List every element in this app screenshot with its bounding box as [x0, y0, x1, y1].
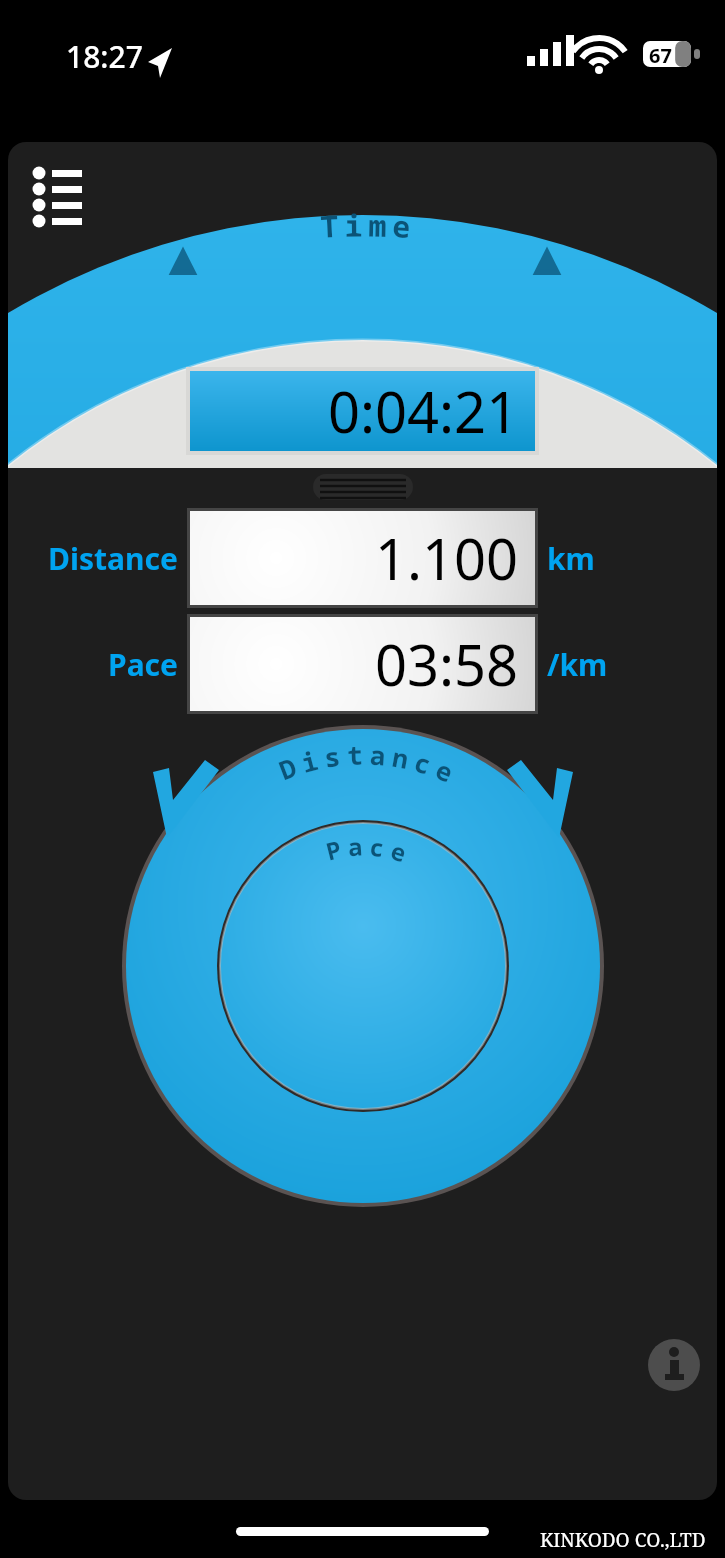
- button[interactable]: Menu: [20, 163, 82, 221]
- button[interactable]: Time: [190, 370, 535, 452]
- button[interactable]: Info: [648, 1339, 700, 1391]
- button[interactable]: Distance and pace dial: [126, 729, 600, 1203]
- button[interactable]: [190, 617, 535, 711]
- button[interactable]: [190, 511, 535, 605]
